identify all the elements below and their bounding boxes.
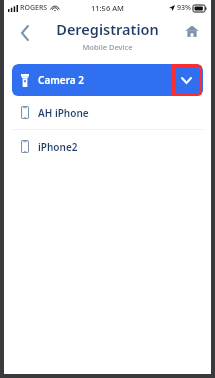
staticText: Camera 2 xyxy=(38,73,84,87)
button[interactable]: Expand xyxy=(173,65,199,95)
button[interactable]: iPhone2 xyxy=(12,130,203,163)
staticText: ROGERS xyxy=(20,3,48,13)
staticText: Mobile Device xyxy=(82,42,133,52)
staticText: AH iPhone xyxy=(38,106,89,120)
staticText: 11:56 AM xyxy=(91,3,124,13)
button[interactable]: Camera 2 xyxy=(12,64,203,96)
staticText: iPhone2 xyxy=(38,140,78,154)
staticText: 93% xyxy=(177,3,191,13)
staticText: Deregistration xyxy=(56,19,159,39)
button[interactable]: Back xyxy=(10,18,40,48)
button[interactable]: Home xyxy=(179,18,205,44)
button[interactable]: AH iPhone xyxy=(12,96,203,129)
